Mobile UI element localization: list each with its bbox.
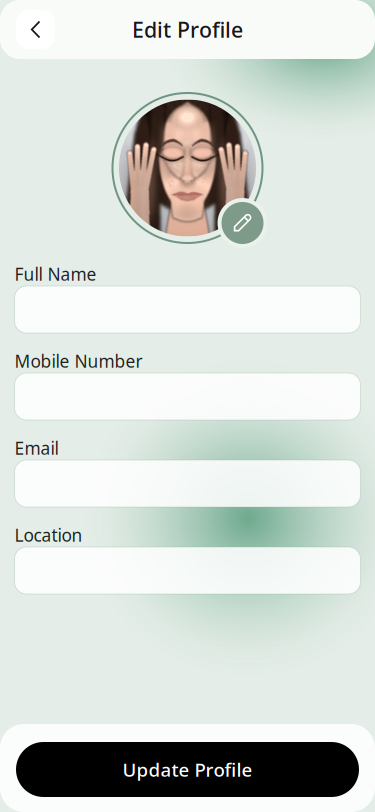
button[interactable]: Back	[16, 10, 55, 49]
button[interactable]: Change photo	[217, 198, 267, 248]
staticText: Full Name	[14, 262, 96, 285]
staticText: Edit Profile	[132, 15, 243, 44]
staticText: Mobile Number	[14, 349, 142, 372]
staticText: Update Profile	[122, 757, 252, 782]
button[interactable]: Full Name	[14, 286, 360, 333]
button[interactable]: Location	[14, 547, 360, 594]
button[interactable]: Email	[14, 460, 360, 507]
button[interactable]: Mobile Number	[14, 373, 360, 420]
button[interactable]: Update Profile	[16, 742, 359, 797]
staticText: Location	[14, 523, 82, 546]
image	[119, 99, 256, 236]
staticText: Email	[14, 436, 58, 459]
